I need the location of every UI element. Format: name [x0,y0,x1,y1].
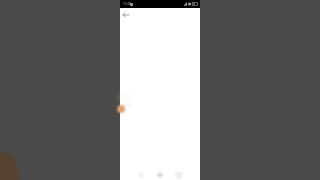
button[interactable]: Back [120,9,132,21]
button[interactable]: Recent apps [174,170,184,180]
button[interactable]: Back [136,170,146,180]
button[interactable]: Home [155,170,165,180]
staticText: 10:48 [123,2,131,6]
